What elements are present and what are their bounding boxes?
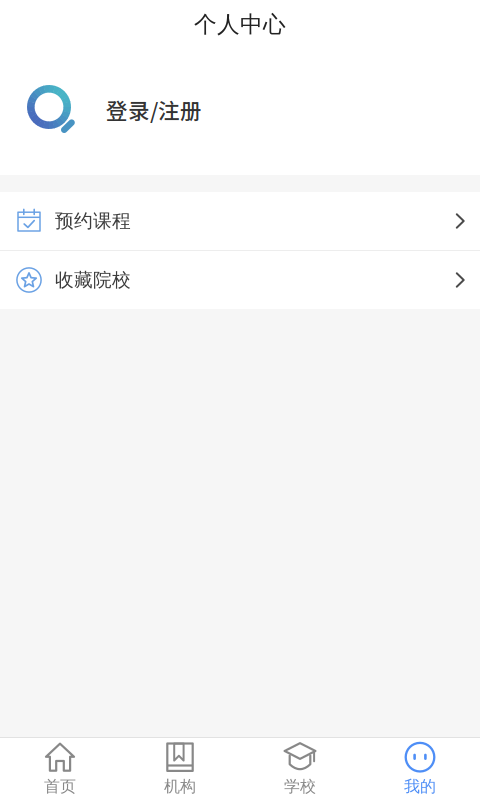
button[interactable]: 我的 xyxy=(360,738,480,800)
button[interactable]: 首页 xyxy=(0,738,120,800)
staticText: 登录/注册 xyxy=(106,94,202,125)
staticText: 收藏院校 xyxy=(55,268,131,291)
staticText: 预约课程 xyxy=(55,209,131,232)
button[interactable]: 学校 xyxy=(240,738,360,800)
staticText: 首页 xyxy=(44,777,76,796)
button[interactable]: 机构 xyxy=(120,738,240,800)
button[interactable]: 预约课程 xyxy=(0,192,480,250)
staticText: 机构 xyxy=(164,777,196,796)
staticText: 个人中心 xyxy=(194,11,286,38)
staticText: 我的 xyxy=(404,777,436,796)
button[interactable]: 登录/注册 xyxy=(0,49,480,175)
staticText: 学校 xyxy=(284,777,316,796)
button[interactable]: 收藏院校 xyxy=(0,251,480,309)
